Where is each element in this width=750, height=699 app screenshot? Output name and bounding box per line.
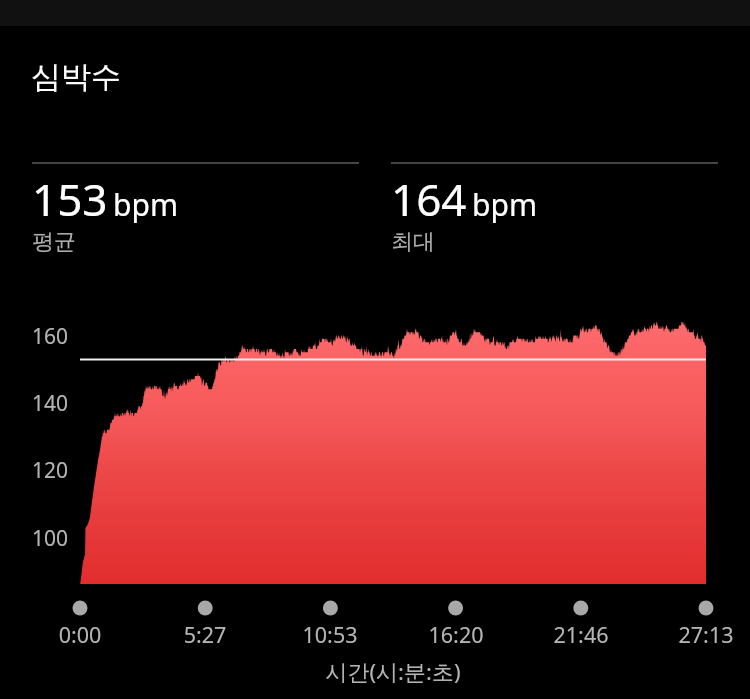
button[interactable]: Heart rate graph bbox=[60, 310, 725, 600]
button[interactable]: 153 bbox=[32, 162, 359, 257]
staticText: 시간(시:분:초) bbox=[233, 656, 553, 686]
staticText: 140 bbox=[2, 389, 68, 418]
staticText: 100 bbox=[2, 524, 68, 553]
staticText: 최대 bbox=[391, 228, 435, 256]
staticText: 16:20 bbox=[396, 620, 516, 649]
staticText: bpm bbox=[472, 184, 537, 225]
button[interactable]: 심박수 bbox=[23, 50, 127, 106]
staticText: 160 bbox=[2, 322, 68, 351]
staticText: 21:46 bbox=[521, 620, 641, 649]
staticText: 153 bbox=[32, 169, 108, 229]
staticText: 평균 bbox=[32, 228, 76, 256]
button[interactable]: 164 bbox=[391, 162, 718, 257]
staticText: 10:53 bbox=[270, 620, 390, 649]
staticText: bpm bbox=[113, 184, 178, 225]
staticText: 심박수 bbox=[31, 58, 121, 96]
staticText: 0:00 bbox=[20, 620, 140, 649]
staticText: 164 bbox=[391, 169, 467, 229]
staticText: 120 bbox=[2, 456, 68, 485]
staticText: 5:27 bbox=[145, 620, 265, 649]
staticText: 27:13 bbox=[646, 620, 750, 649]
